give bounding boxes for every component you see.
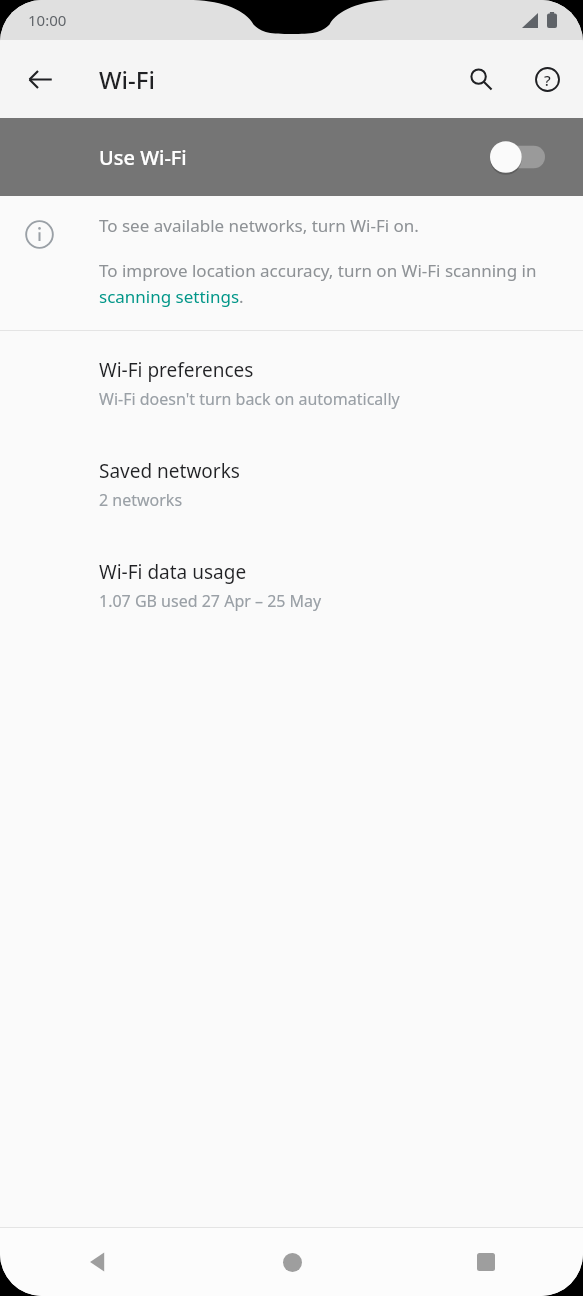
staticText: Wi-Fi xyxy=(99,63,155,96)
staticText: 1.07 GB used 27 Apr – 25 May xyxy=(99,590,322,612)
staticText: To see available networks, turn Wi-Fi on… xyxy=(99,214,419,237)
staticText: Use Wi-Fi xyxy=(99,144,187,171)
button[interactable]: Back xyxy=(0,1228,195,1296)
button[interactable]: Wi-Fi data usage xyxy=(0,515,583,616)
button[interactable]: Back xyxy=(14,53,66,105)
staticText: 2 networks xyxy=(99,489,183,511)
button[interactable]: Home xyxy=(195,1228,389,1296)
staticText: ? xyxy=(544,70,551,90)
button[interactable]: Search xyxy=(454,52,508,106)
button[interactable]: Use Wi-Fi xyxy=(0,118,583,196)
staticText: Wi-Fi preferences xyxy=(99,357,254,383)
staticText: Wi-Fi data usage xyxy=(99,559,247,585)
staticText: Saved networks xyxy=(99,458,240,484)
button[interactable]: Help xyxy=(520,52,574,106)
button[interactable]: Saved networks xyxy=(0,414,583,515)
staticText: To improve location accuracy, turn on Wi… xyxy=(99,259,549,308)
button[interactable]: Wi-Fi preferences xyxy=(0,331,583,414)
button[interactable]: Recent apps xyxy=(389,1228,583,1296)
staticText: Wi-Fi doesn't turn back on automatically xyxy=(99,388,400,410)
staticText: 10:00 xyxy=(28,10,67,30)
